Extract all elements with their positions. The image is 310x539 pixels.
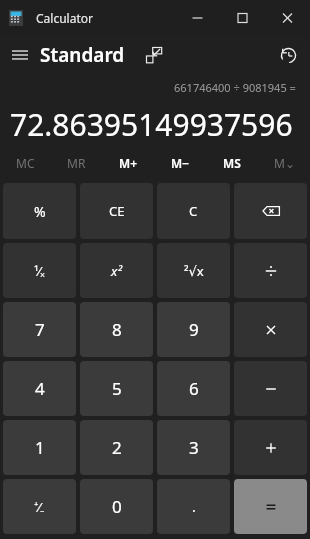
- staticText: 5: [112, 377, 122, 400]
- staticText: 8: [112, 318, 122, 341]
- button[interactable]: ⁺⁄₋: [3, 479, 76, 534]
- button[interactable]: Backspace: [234, 183, 307, 239]
- button[interactable]: Close: [265, 0, 310, 36]
- staticText: ⁺⁄₋: [34, 498, 45, 516]
- staticText: C: [189, 202, 198, 220]
- staticText: 6: [189, 377, 199, 400]
- staticText: .: [192, 497, 196, 516]
- button[interactable]: CE: [80, 183, 153, 239]
- button[interactable]: Minimize: [175, 0, 220, 36]
- staticText: Standard: [40, 42, 125, 68]
- button[interactable]: Keep on top: [137, 38, 171, 72]
- button[interactable]: MS: [206, 148, 258, 178]
- button[interactable]: M−: [154, 148, 206, 178]
- button[interactable]: x²: [80, 243, 153, 298]
- button[interactable]: 1: [3, 420, 76, 475]
- button[interactable]: 7: [3, 302, 76, 357]
- button[interactable]: 6: [157, 361, 230, 416]
- staticText: %: [34, 202, 46, 221]
- staticText: 2: [112, 436, 122, 459]
- staticText: M−: [171, 155, 190, 171]
- button[interactable]: 72.86395149937596: [10, 100, 300, 148]
- button[interactable]: 3: [157, 420, 230, 475]
- button[interactable]: 0: [80, 479, 153, 534]
- staticText: Calculator: [36, 10, 93, 26]
- staticText: M+: [119, 155, 138, 171]
- button[interactable]: 8: [80, 302, 153, 357]
- button[interactable]: Divide: [234, 243, 307, 298]
- button[interactable]: Minus: [234, 361, 307, 416]
- staticText: 0: [112, 495, 122, 518]
- button[interactable]: Open navigation: [0, 38, 40, 72]
- button[interactable]: M+: [102, 148, 154, 178]
- button[interactable]: Maximize: [220, 0, 265, 36]
- button[interactable]: ¹⁄ₓ: [3, 243, 76, 298]
- staticText: 661746400 ÷ 9081945 =: [174, 80, 296, 95]
- button[interactable]: %: [3, 183, 76, 239]
- button[interactable]: Multiply: [234, 302, 307, 357]
- staticText: CE: [109, 202, 125, 220]
- button[interactable]: 9: [157, 302, 230, 357]
- button[interactable]: C: [157, 183, 230, 239]
- staticText: M⌄: [274, 155, 295, 171]
- button[interactable]: MC: [0, 148, 51, 178]
- button[interactable]: 5: [80, 361, 153, 416]
- button[interactable]: MR: [51, 148, 102, 178]
- button[interactable]: ²√x: [157, 243, 230, 298]
- staticText: MR: [67, 155, 86, 171]
- staticText: 1: [35, 436, 45, 459]
- staticText: ¹⁄ₓ: [34, 262, 45, 280]
- staticText: 7: [35, 318, 45, 341]
- button[interactable]: .: [157, 479, 230, 534]
- button[interactable]: 4: [3, 361, 76, 416]
- button[interactable]: 2: [80, 420, 153, 475]
- button[interactable]: Equals: [234, 479, 307, 534]
- staticText: MS: [223, 155, 241, 171]
- staticText: 3: [189, 436, 199, 459]
- button[interactable]: Plus: [234, 420, 307, 475]
- staticText: 9: [189, 318, 199, 341]
- staticText: ²√x: [184, 262, 204, 280]
- button[interactable]: History: [266, 38, 310, 72]
- staticText: 4: [35, 377, 45, 400]
- button[interactable]: M⌄: [258, 148, 310, 178]
- staticText: MC: [16, 155, 35, 171]
- staticText: 72.86395149937596: [10, 104, 293, 145]
- staticText: x²: [111, 262, 122, 280]
